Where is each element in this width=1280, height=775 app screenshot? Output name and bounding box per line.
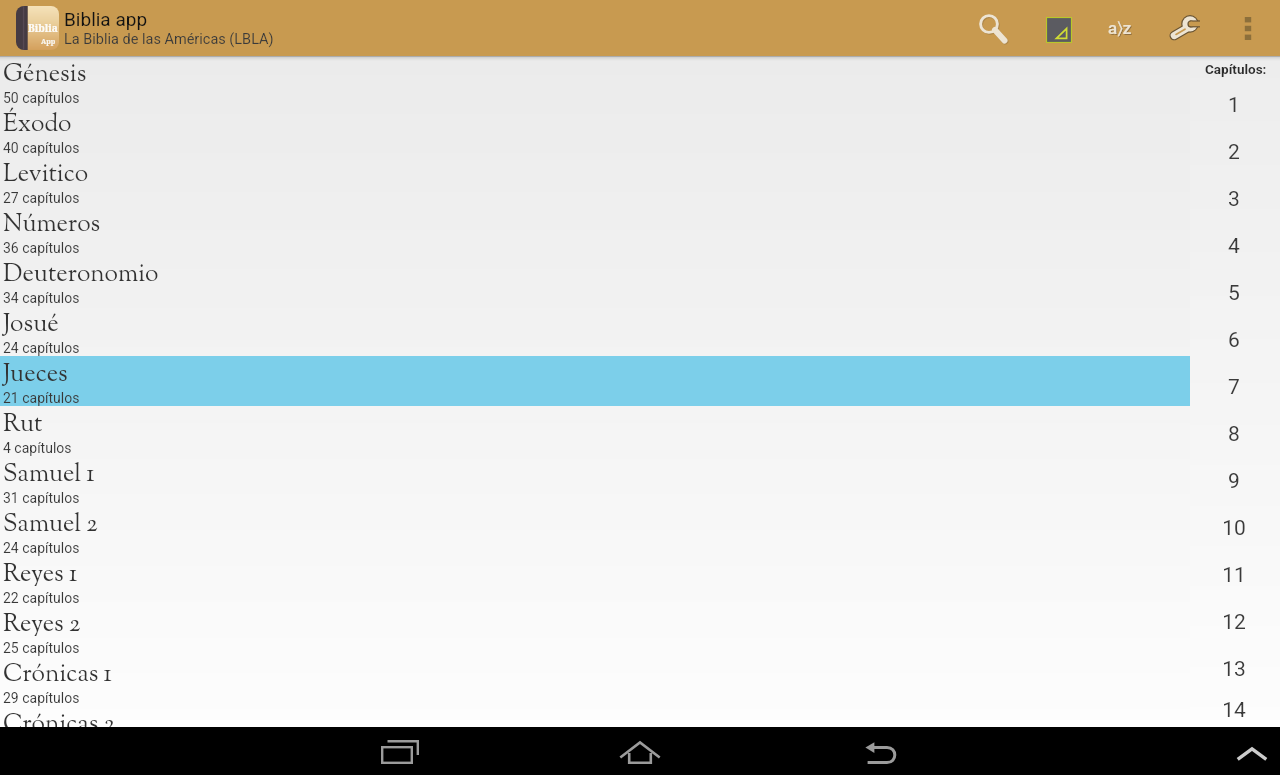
button[interactable]: Crónicas 2 bbox=[0, 706, 1190, 727]
staticText: 24 capítulos bbox=[3, 340, 80, 356]
button[interactable]: 12 bbox=[1190, 599, 1280, 646]
button[interactable]: Recent apps bbox=[340, 727, 460, 775]
button[interactable]: 4 bbox=[1190, 223, 1280, 270]
staticText: 11 bbox=[1222, 563, 1246, 588]
staticText: 6 bbox=[1228, 328, 1240, 353]
button[interactable]: 7 bbox=[1190, 364, 1280, 411]
staticText: Samuel 1 bbox=[3, 457, 95, 492]
staticText: 5 bbox=[1228, 281, 1240, 306]
button[interactable]: 8 bbox=[1190, 411, 1280, 458]
staticText: Éxodo bbox=[3, 107, 72, 142]
button[interactable]: 11 bbox=[1190, 552, 1280, 599]
staticText: 3 bbox=[1228, 187, 1240, 212]
button[interactable]: Jueces bbox=[0, 356, 1190, 406]
staticText: 36 capítulos bbox=[3, 240, 80, 256]
button[interactable]: 1 bbox=[1190, 82, 1280, 129]
button[interactable]: Josué bbox=[0, 306, 1190, 356]
button[interactable]: Génesis bbox=[0, 56, 1190, 106]
button[interactable]: Search bbox=[965, 0, 1021, 56]
staticText: Samuel 2 bbox=[3, 507, 98, 542]
staticText: 9 bbox=[1228, 469, 1240, 494]
button[interactable]: Reyes 2 bbox=[0, 606, 1190, 656]
button[interactable]: Números bbox=[0, 206, 1190, 256]
button[interactable]: 5 bbox=[1190, 270, 1280, 317]
button[interactable]: 3 bbox=[1190, 176, 1280, 223]
staticText: 4 bbox=[1228, 234, 1240, 259]
staticText: 25 capítulos bbox=[3, 640, 80, 656]
staticText: 40 capítulos bbox=[3, 140, 80, 156]
staticText: 50 capítulos bbox=[3, 90, 80, 106]
staticText: 14 bbox=[1222, 698, 1246, 723]
staticText: Capítulos: bbox=[1205, 61, 1267, 77]
staticText: 24 capítulos bbox=[3, 540, 80, 556]
staticText: 8 bbox=[1228, 422, 1240, 447]
button[interactable]: Éxodo bbox=[0, 106, 1190, 156]
staticText: Rut bbox=[3, 407, 43, 442]
staticText: Jueces bbox=[3, 357, 68, 392]
staticText: a〉z bbox=[1109, 19, 1133, 39]
button[interactable]: 10 bbox=[1190, 505, 1280, 552]
staticText: 31 capítulos bbox=[3, 490, 80, 506]
button[interactable]: Deuteronomio bbox=[0, 256, 1190, 306]
staticText: Reyes 1 bbox=[3, 557, 78, 592]
button[interactable]: Samuel 2 bbox=[0, 506, 1190, 556]
staticText: 13 bbox=[1222, 657, 1246, 682]
staticText: Biblia bbox=[28, 21, 58, 35]
staticText: 22 capítulos bbox=[3, 590, 80, 606]
button[interactable]: Reyes 1 bbox=[0, 556, 1190, 606]
button[interactable]: Display mode bbox=[1030, 0, 1086, 56]
staticText: 2 bbox=[1228, 140, 1240, 165]
button[interactable]: Crónicas 1 bbox=[0, 656, 1190, 706]
button[interactable]: 6 bbox=[1190, 317, 1280, 364]
staticText: Deuteronomio bbox=[3, 257, 159, 292]
button[interactable]: Back bbox=[822, 727, 942, 775]
button[interactable]: Text size bbox=[1092, 0, 1148, 56]
staticText: 29 capítulos bbox=[3, 690, 80, 706]
staticText: 34 capítulos bbox=[3, 290, 80, 306]
staticText: 7 bbox=[1228, 375, 1240, 400]
button[interactable]: Biblia bbox=[0, 0, 282, 56]
staticText: 12 bbox=[1222, 610, 1246, 635]
button[interactable]: 2 bbox=[1190, 129, 1280, 176]
staticText: Números bbox=[3, 207, 101, 242]
button[interactable]: More options bbox=[1224, 0, 1272, 56]
staticText: 10 bbox=[1222, 516, 1246, 541]
staticText: Crónicas 2 bbox=[3, 707, 115, 728]
button[interactable]: Settings bbox=[1156, 0, 1212, 56]
staticText: 21 capítulos bbox=[3, 390, 80, 406]
staticText: a〉z bbox=[1108, 18, 1132, 38]
button[interactable]: Home bbox=[580, 727, 700, 775]
button[interactable]: Rut bbox=[0, 406, 1190, 456]
button[interactable]: 9 bbox=[1190, 458, 1280, 505]
staticText: La Biblia de las Américas (LBLA) bbox=[64, 31, 274, 48]
button[interactable]: Levitico bbox=[0, 156, 1190, 206]
staticText: 1 bbox=[1228, 93, 1240, 118]
button[interactable]: Samuel 1 bbox=[0, 456, 1190, 506]
staticText: Reyes 2 bbox=[3, 607, 81, 642]
staticText: App bbox=[41, 37, 56, 47]
staticText: Levitico bbox=[3, 157, 89, 192]
staticText: Génesis bbox=[3, 57, 87, 92]
button[interactable]: 13 bbox=[1190, 646, 1280, 693]
button[interactable]: Expand bbox=[1216, 727, 1280, 775]
staticText: Josué bbox=[3, 307, 59, 342]
staticText: 27 capítulos bbox=[3, 190, 80, 206]
staticText: 4 capítulos bbox=[3, 440, 72, 456]
button[interactable]: 14 bbox=[1190, 693, 1280, 727]
staticText: Biblia app bbox=[64, 8, 148, 30]
staticText: Crónicas 1 bbox=[3, 657, 112, 692]
